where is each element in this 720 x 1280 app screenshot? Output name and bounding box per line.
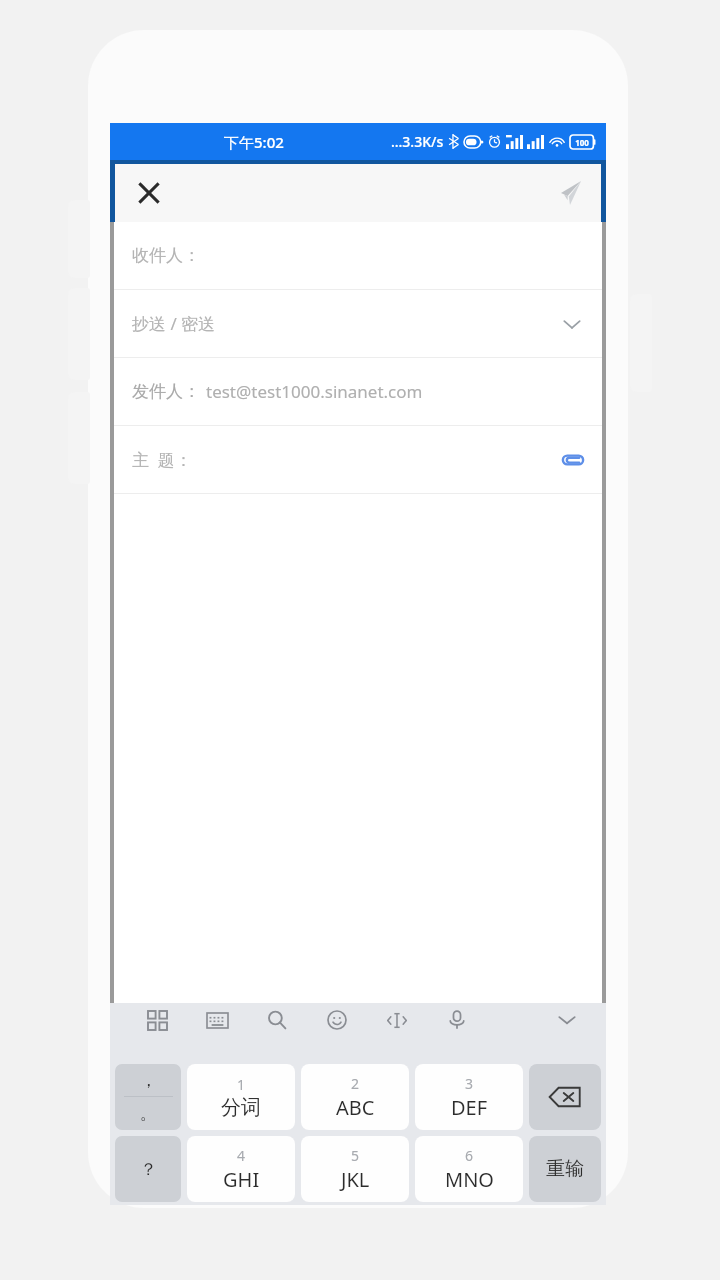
button[interactable]: Close (127, 171, 171, 215)
staticText: 100 (575, 137, 589, 148)
staticText: 下午5:02 (224, 132, 284, 152)
button[interactable]: 发件人： (114, 358, 602, 426)
button[interactable]: Search (260, 1003, 294, 1037)
button[interactable]: Cursor (380, 1003, 414, 1037)
button[interactable]: 收件人： (114, 222, 602, 290)
staticText: 抄送 / 密送 (132, 312, 216, 335)
staticText: test@test1000.sinanet.com (206, 380, 423, 403)
staticText: 4 (237, 1146, 246, 1165)
staticText: 2 (351, 1074, 360, 1093)
button[interactable]: 主 题： (114, 426, 602, 494)
button[interactable]: 重输 (529, 1136, 601, 1202)
button[interactable]: 6 (415, 1136, 523, 1202)
staticText: JKL (341, 1166, 370, 1193)
staticText: 重输 (546, 1157, 584, 1181)
button[interactable]: 3 (415, 1064, 523, 1130)
staticText: 。 (140, 1103, 157, 1124)
button[interactable]: Voice input (440, 1003, 474, 1037)
staticText: MNO (445, 1166, 494, 1193)
button[interactable]: Keyboard layouts (140, 1003, 174, 1037)
button[interactable]: 2 (301, 1064, 409, 1130)
button[interactable]: 抄送 / 密送 (114, 290, 602, 358)
staticText: ？ (140, 1159, 157, 1180)
staticText: ABC (336, 1094, 375, 1121)
staticText: ， (140, 1070, 157, 1091)
button[interactable]: 1 (187, 1064, 295, 1130)
button[interactable]: Keyboard (200, 1003, 234, 1037)
button[interactable]: ？ (115, 1136, 181, 1202)
staticText: 主 题： (132, 448, 192, 471)
staticText: GHI (223, 1166, 260, 1193)
button[interactable]: Send (545, 171, 589, 215)
staticText: 5 (351, 1146, 360, 1165)
staticText: 收件人： (132, 245, 200, 266)
button[interactable]: 5 (301, 1136, 409, 1202)
staticText: 分词 (221, 1095, 261, 1120)
button[interactable]: Hide keyboard (550, 1003, 584, 1037)
button[interactable]: 。 (115, 1097, 181, 1130)
button[interactable]: ， (115, 1064, 181, 1096)
staticText: DEF (451, 1094, 488, 1121)
staticText: 发件人： (132, 381, 200, 402)
staticText: …3.3K/s (391, 132, 444, 151)
button[interactable]: Backspace (529, 1064, 601, 1130)
button[interactable]: 4 (187, 1136, 295, 1202)
staticText: 1 (237, 1075, 246, 1094)
staticText: 3 (465, 1074, 474, 1093)
staticText: 6 (465, 1146, 474, 1165)
button[interactable]: Emoji (320, 1003, 354, 1037)
